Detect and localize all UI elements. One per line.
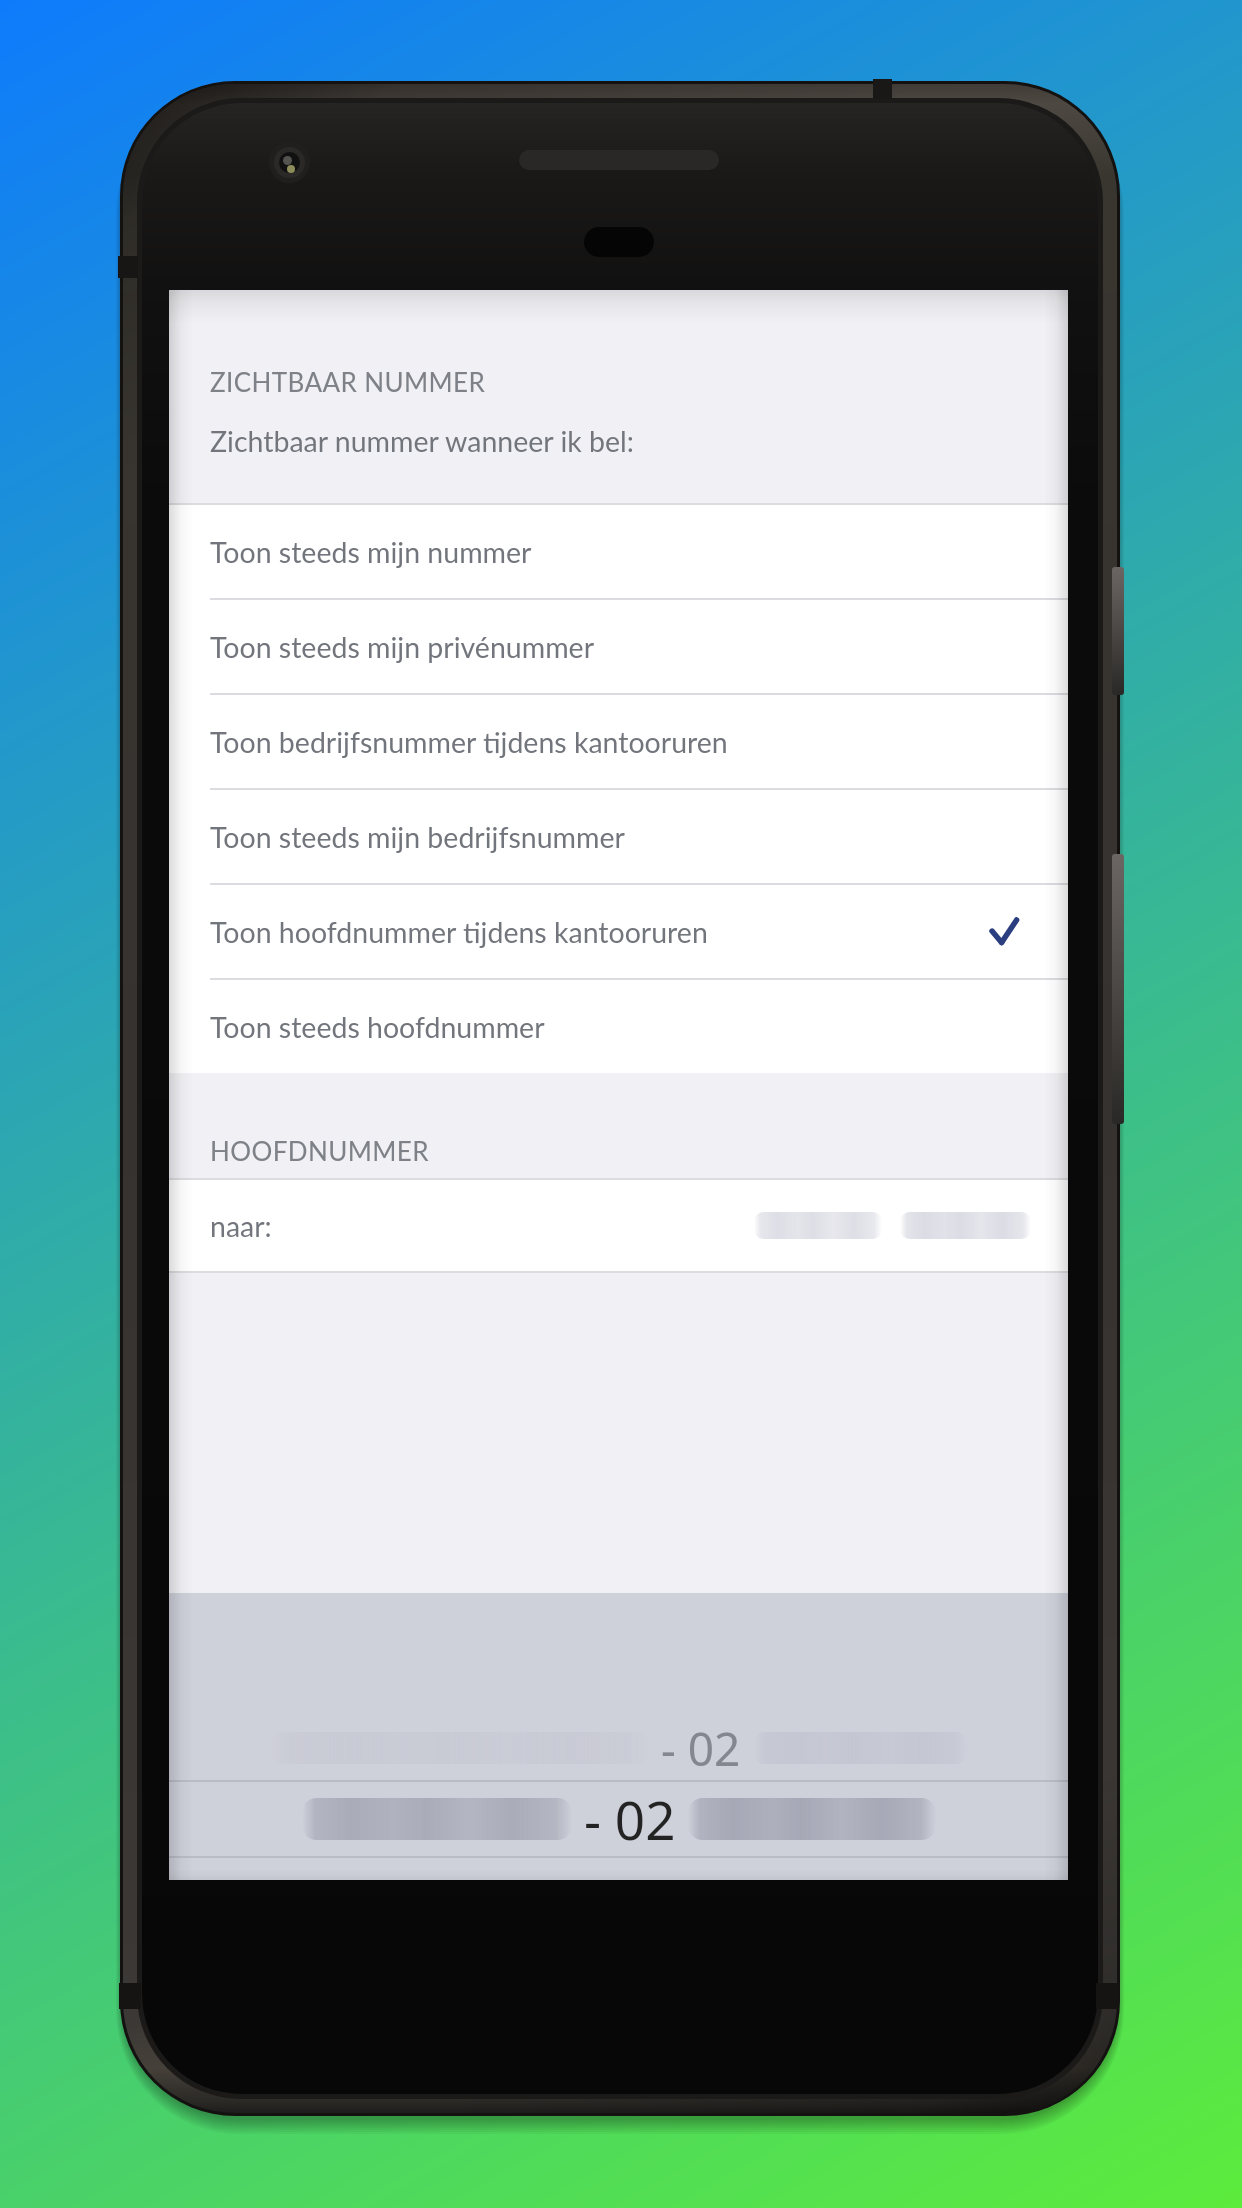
staticText: Toon steeds mijn bedrijfsnummer [210, 820, 625, 854]
staticText: - 02 [584, 1783, 676, 1855]
button[interactable]: Toon steeds mijn bedrijfsnummer [169, 790, 1068, 883]
button[interactable]: Toon bedrijfsnummer tijdens kantooruren [169, 695, 1068, 788]
other: Geselecteerd [989, 917, 1019, 947]
button[interactable]: Toon hoofdnummer tijdens kantooruren [169, 885, 1068, 978]
button[interactable]: - 02 [169, 1782, 1068, 1856]
staticText: HOOFDNUMMER [210, 1135, 429, 1166]
staticText: Toon steeds mijn privénummer [210, 630, 595, 664]
staticText: Toon steeds hoofdnummer [210, 1010, 545, 1044]
staticText: Toon steeds mijn nummer [210, 535, 532, 569]
staticText: Toon bedrijfsnummer tijdens kantooruren [210, 725, 728, 759]
button[interactable]: naar: [169, 1180, 1068, 1271]
button[interactable]: - 02 [169, 1717, 1068, 1779]
button[interactable]: Toon steeds hoofdnummer [169, 980, 1068, 1073]
staticText: ZICHTBAAR NUMMER [210, 366, 486, 397]
staticText: - 02 [661, 1717, 741, 1779]
staticText: Toon hoofdnummer tijdens kantooruren [210, 915, 708, 949]
staticText: Zichtbaar nummer wanneer ik bel: [210, 424, 634, 458]
button[interactable]: Toon steeds mijn nummer [169, 505, 1068, 598]
staticText: naar: [210, 1209, 272, 1243]
button[interactable]: Toon steeds mijn privénummer [169, 600, 1068, 693]
